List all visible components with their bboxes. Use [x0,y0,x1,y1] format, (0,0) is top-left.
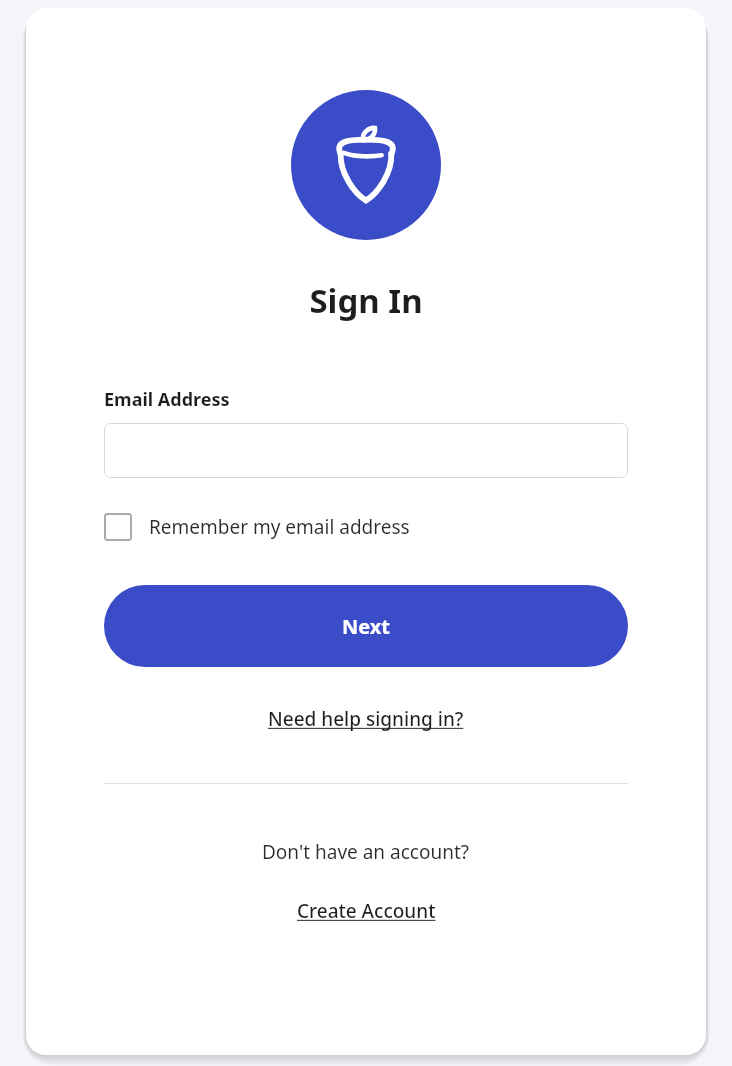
staticText: Don't have an account? [262,839,470,865]
button[interactable]: Remember my email address [104,511,410,543]
staticText: Need help signing in? [268,706,464,732]
staticText: Remember my email address [149,514,410,540]
button[interactable] [104,423,628,478]
other: College Board logo [291,90,441,240]
staticText: Next [342,613,391,640]
button[interactable]: Create Account [293,895,440,927]
button[interactable]: Next [104,585,628,667]
staticText: Create Account [297,898,436,924]
staticText: Email Address [104,387,230,412]
button[interactable]: Need help signing in? [264,703,468,735]
staticText: Sign In [309,278,423,323]
